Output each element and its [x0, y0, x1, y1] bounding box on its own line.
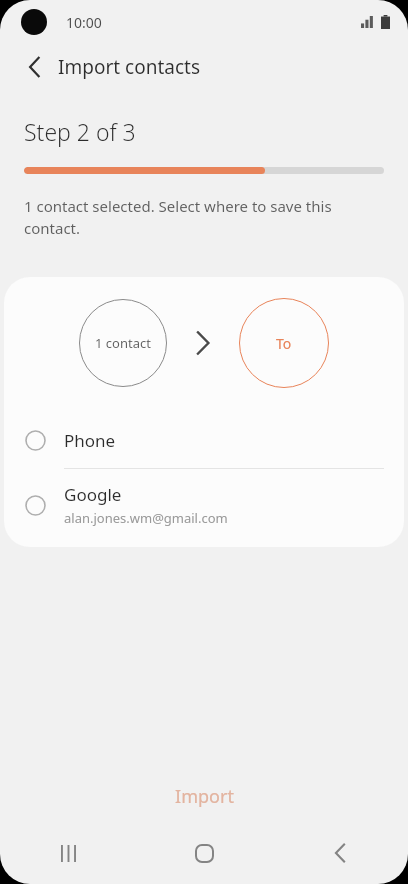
button[interactable]: 1 contact	[79, 299, 167, 387]
staticText: 1 contact	[95, 334, 151, 352]
staticText: alan.jones.wm@gmail.com	[64, 509, 228, 527]
staticText: 10:00	[66, 13, 102, 32]
button[interactable]: Import	[0, 772, 408, 820]
staticText: Phone	[64, 429, 116, 452]
staticText: Import contacts	[58, 54, 200, 80]
button[interactable]: To	[239, 298, 329, 388]
staticText: Google	[64, 483, 122, 506]
button[interactable]: Phone	[4, 413, 404, 468]
button[interactable]: Recent apps	[0, 832, 136, 874]
button[interactable]: Google	[4, 469, 404, 541]
button[interactable]: Home	[136, 832, 272, 874]
staticText: Step 2 of 3	[24, 116, 136, 147]
button[interactable]: Back	[272, 832, 408, 874]
staticText: To	[276, 334, 292, 353]
staticText: Import	[175, 784, 234, 809]
button[interactable]: Back	[16, 49, 52, 85]
staticText: 1 contact selected. Select where to save…	[24, 196, 382, 239]
